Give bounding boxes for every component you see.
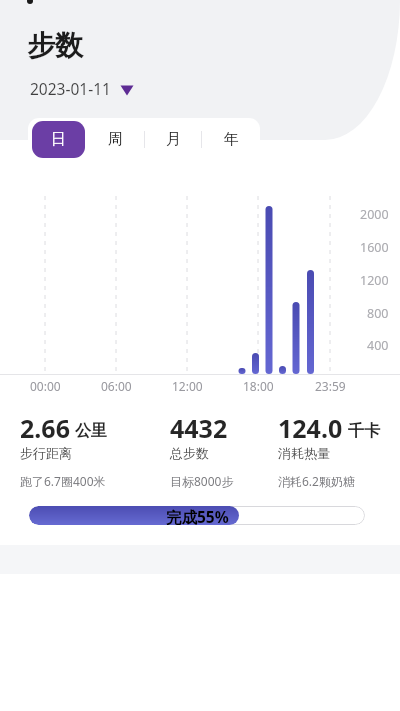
staticText: 跑了6.7圈400米	[20, 473, 106, 489]
staticText: 步数	[27, 28, 83, 63]
staticText: 23:59	[315, 378, 346, 393]
staticText: 消耗6.2颗奶糖	[278, 473, 355, 489]
button[interactable]: 月	[144, 118, 202, 161]
staticText: 千卡	[348, 421, 380, 441]
staticText: 月	[166, 130, 181, 149]
button[interactable]	[12, 0, 48, 22]
staticText: 步行距离	[20, 445, 72, 461]
button[interactable]: 完成55%	[29, 506, 365, 525]
staticText: 4432	[170, 411, 228, 445]
staticText: 目标8000步	[170, 473, 234, 489]
staticText: 124.0	[278, 411, 343, 445]
staticText: 总步数	[170, 445, 209, 461]
staticText: 年	[224, 130, 239, 149]
staticText: 消耗热量	[278, 445, 330, 461]
staticText: 周	[108, 130, 123, 149]
staticText: 完成55%	[166, 506, 229, 525]
staticText: 2023-01-11	[30, 78, 111, 99]
staticText: 1200	[360, 272, 389, 288]
staticText: 2.66	[20, 411, 70, 445]
button[interactable]: 2023-01-11	[30, 78, 134, 99]
staticText: 1600	[360, 239, 389, 255]
staticText: 2000	[360, 206, 389, 222]
staticText: 00:00	[30, 378, 61, 393]
staticText: 06:00	[101, 378, 132, 393]
staticText: 日	[51, 130, 66, 149]
button[interactable]: 年	[202, 118, 260, 161]
staticText: 12:00	[172, 378, 203, 393]
staticText: 400	[367, 337, 389, 353]
staticText: 800	[367, 305, 389, 321]
staticText: 18:00	[243, 378, 274, 393]
staticText: 公里	[75, 421, 107, 441]
button[interactable]: 日	[32, 121, 85, 158]
button[interactable]: 周	[86, 118, 144, 161]
